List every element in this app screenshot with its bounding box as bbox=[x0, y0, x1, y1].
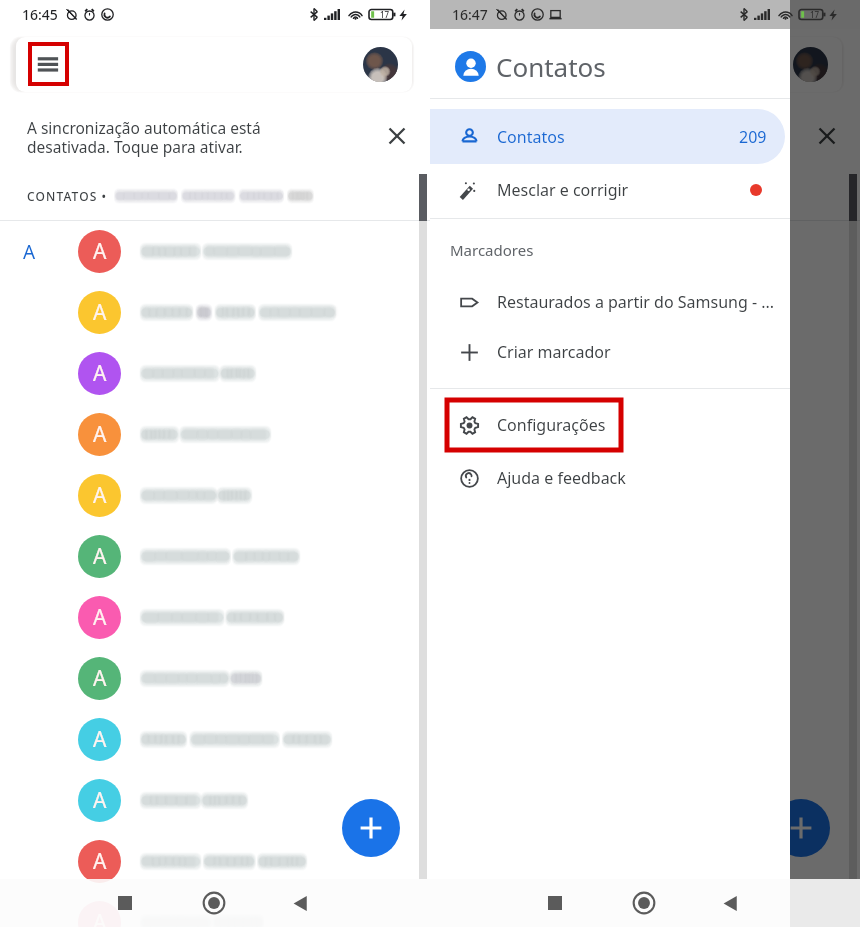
staticText: A bbox=[23, 239, 36, 265]
button[interactable]: Mesclar e corrigir bbox=[430, 164, 790, 216]
button[interactable]: Back bbox=[710, 879, 750, 927]
staticText: A bbox=[523, 237, 537, 266]
staticText: A bbox=[523, 481, 537, 510]
button[interactable]: Create contact bbox=[342, 799, 400, 857]
button[interactable]: A bbox=[0, 587, 430, 648]
staticText: Ajuda e feedback bbox=[497, 467, 626, 489]
staticText: A bbox=[93, 359, 107, 388]
button[interactable]: Recents bbox=[535, 879, 575, 927]
staticText: A bbox=[93, 420, 107, 449]
button[interactable] bbox=[446, 37, 842, 92]
staticText: A sincronização automática está desativa… bbox=[27, 117, 261, 158]
staticText: 209 bbox=[739, 126, 767, 148]
button[interactable]: A bbox=[430, 831, 860, 892]
staticText: Mesclar e corrigir bbox=[497, 179, 629, 201]
button[interactable]: A bbox=[430, 221, 860, 282]
staticText: A bbox=[93, 542, 107, 571]
button[interactable]: Open navigation drawer bbox=[30, 44, 67, 84]
button[interactable]: A bbox=[430, 343, 860, 404]
staticText: A bbox=[93, 725, 107, 754]
button[interactable]: A bbox=[430, 770, 860, 831]
staticText: A bbox=[93, 908, 107, 927]
staticText: A bbox=[93, 786, 107, 815]
button[interactable]: A bbox=[430, 587, 860, 648]
button[interactable]: A bbox=[430, 892, 860, 927]
staticText: A bbox=[93, 664, 107, 693]
staticText: Marcadores bbox=[450, 240, 534, 260]
button[interactable]: Dismiss bbox=[812, 121, 842, 151]
button[interactable]: A bbox=[0, 648, 430, 709]
button[interactable] bbox=[16, 37, 412, 92]
staticText: CONTATOS • bbox=[27, 188, 108, 204]
staticText: 17 bbox=[380, 9, 390, 20]
staticText: CONTATOS • bbox=[457, 188, 538, 204]
button[interactable]: A bbox=[0, 770, 430, 831]
staticText: A bbox=[453, 239, 466, 265]
button[interactable]: Restaurados a partir do Samsung - ... bbox=[430, 276, 790, 328]
button[interactable]: Back bbox=[280, 879, 320, 927]
button[interactable]: Open navigation drawer bbox=[460, 44, 497, 84]
button[interactable]: A bbox=[0, 526, 430, 587]
staticText: A bbox=[93, 237, 107, 266]
staticText: A bbox=[523, 298, 537, 327]
staticText: A bbox=[523, 420, 537, 449]
staticText: A bbox=[93, 847, 107, 876]
button[interactable]: Home bbox=[624, 879, 664, 927]
button[interactable]: A bbox=[430, 526, 860, 587]
button[interactable]: A bbox=[430, 648, 860, 709]
staticText: Configurações bbox=[497, 414, 606, 436]
staticText: Contatos bbox=[496, 49, 606, 84]
button[interactable]: A bbox=[430, 404, 860, 465]
button[interactable]: A bbox=[0, 282, 430, 343]
button[interactable]: Account bbox=[363, 47, 398, 82]
button[interactable]: A bbox=[0, 221, 430, 282]
button[interactable]: A bbox=[0, 709, 430, 770]
button[interactable]: A bbox=[0, 465, 430, 526]
staticText: A sincronização automática está desativa… bbox=[457, 117, 691, 158]
button[interactable]: A bbox=[430, 709, 860, 770]
button[interactable]: A bbox=[0, 831, 430, 892]
button[interactable]: Configurações bbox=[447, 400, 621, 450]
button[interactable]: Account bbox=[793, 47, 828, 82]
staticText: Contatos bbox=[497, 126, 565, 148]
button[interactable]: Dismiss bbox=[382, 121, 412, 151]
staticText: Restaurados a partir do Samsung - ... bbox=[497, 291, 775, 313]
staticText: 16:47 bbox=[452, 5, 488, 24]
button[interactable]: Home bbox=[194, 879, 234, 927]
staticText: Criar marcador bbox=[497, 341, 611, 363]
button[interactable]: A bbox=[430, 282, 860, 343]
button[interactable]: Contatos bbox=[430, 109, 785, 164]
staticText: A bbox=[93, 481, 107, 510]
button[interactable]: Recents bbox=[105, 879, 145, 927]
button[interactable]: A bbox=[0, 404, 430, 465]
staticText: 17 bbox=[810, 9, 820, 20]
button[interactable]: A bbox=[0, 892, 430, 927]
staticText: A bbox=[93, 603, 107, 632]
button[interactable]: A bbox=[0, 343, 430, 404]
button[interactable]: Criar marcador bbox=[430, 326, 790, 378]
button[interactable]: A bbox=[430, 465, 860, 526]
staticText: 16:45 bbox=[22, 5, 58, 24]
button[interactable]: Ajuda e feedback bbox=[430, 452, 790, 504]
staticText: A bbox=[93, 298, 107, 327]
button[interactable]: Create contact bbox=[772, 799, 830, 857]
